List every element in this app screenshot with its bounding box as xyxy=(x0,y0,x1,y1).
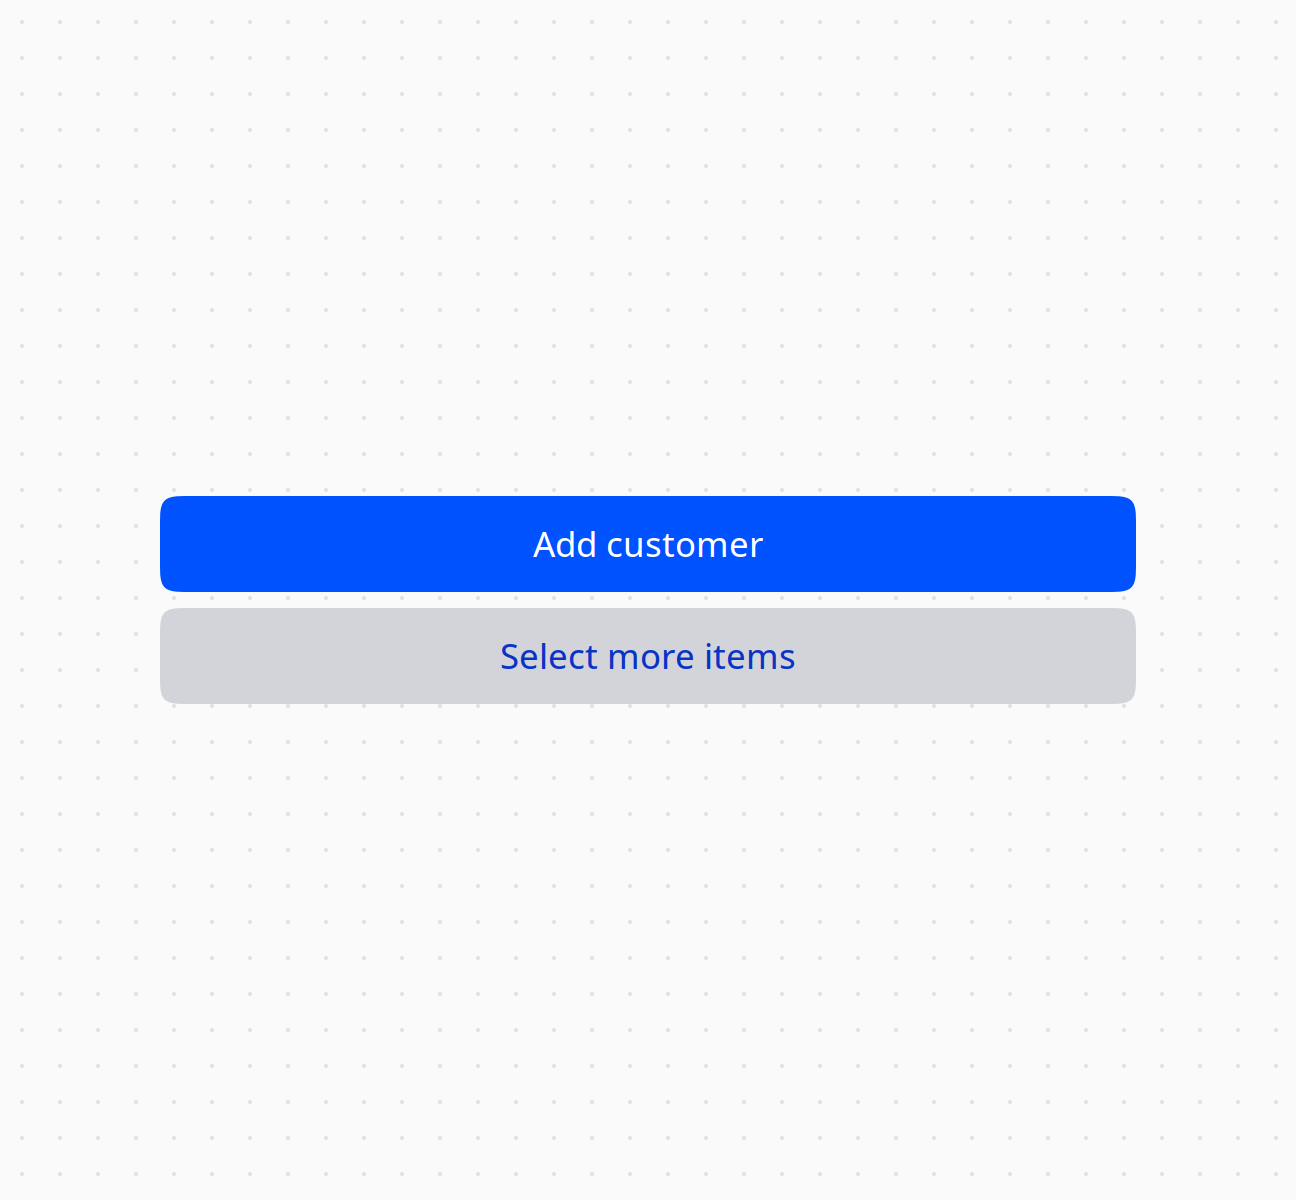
staticText: Add customer xyxy=(533,520,763,567)
staticText: Select more items xyxy=(500,632,796,679)
button[interactable]: Select more items xyxy=(160,608,1136,704)
button[interactable]: Add customer xyxy=(160,496,1136,592)
